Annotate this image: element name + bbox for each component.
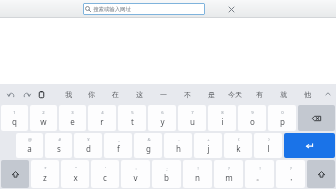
button[interactable]: More suggestions: [319, 84, 336, 104]
button[interactable]: 搜索或输入网址: [83, 3, 205, 15]
button[interactable]: 是: [199, 84, 223, 104]
button[interactable]: 3: [59, 105, 86, 131]
button[interactable]: *: [31, 160, 59, 188]
staticText: +: [207, 137, 210, 143]
button[interactable]: 他: [295, 84, 319, 104]
staticText: p: [280, 116, 285, 127]
staticText: ': [105, 166, 106, 172]
staticText: ;: [166, 166, 168, 172]
staticText: 7: [191, 110, 194, 116]
staticText: h: [176, 143, 181, 154]
staticText: m: [225, 172, 233, 183]
button[interactable]: Backspace: [298, 105, 335, 131]
staticText: !: [259, 166, 261, 172]
staticText: t: [131, 116, 134, 127]
staticText: 0: [281, 110, 284, 116]
staticText: c: [103, 172, 107, 183]
staticText: u: [190, 116, 195, 127]
staticText: ": [75, 166, 77, 172]
button[interactable]: ?: [214, 160, 243, 188]
button[interactable]: &: [134, 133, 162, 158]
button[interactable]: 不: [175, 84, 199, 104]
button[interactable]: #: [45, 133, 72, 158]
staticText: 在: [112, 90, 119, 99]
staticText: 就: [280, 90, 287, 99]
staticText: 5: [131, 110, 134, 116]
staticText: x: [73, 172, 78, 183]
staticText: i: [221, 116, 224, 127]
staticText: 6: [161, 110, 164, 116]
button[interactable]: Shift right: [307, 160, 335, 188]
staticText: z: [43, 172, 47, 183]
staticText: y: [160, 116, 165, 127]
staticText: 有: [256, 90, 263, 99]
staticText: _: [118, 137, 120, 143]
staticText: l: [267, 143, 270, 154]
button[interactable]: 就: [271, 84, 295, 104]
staticText: f: [117, 143, 120, 154]
staticText: q: [12, 116, 17, 127]
staticText: 2: [42, 110, 45, 116]
staticText: 是: [208, 90, 215, 99]
button[interactable]: Enter: [284, 133, 335, 158]
button[interactable]: Close: [225, 3, 237, 15]
button[interactable]: Redo: [19, 87, 34, 102]
staticText: n: [195, 172, 200, 183]
button[interactable]: ?: [276, 160, 305, 188]
button[interactable]: 7: [178, 105, 206, 131]
staticText: b: [164, 172, 169, 183]
button[interactable]: 我: [57, 84, 80, 104]
staticText: 4: [101, 110, 104, 116]
staticText: 我: [65, 90, 72, 99]
button[interactable]: 你: [80, 84, 103, 104]
staticText: 他: [304, 90, 311, 99]
button[interactable]: 6: [148, 105, 176, 131]
button[interactable]: 2: [30, 105, 57, 131]
button[interactable]: 有: [247, 84, 271, 104]
staticText: 一: [160, 90, 167, 99]
staticText: o: [250, 116, 255, 127]
staticText: !: [197, 166, 199, 172]
button[interactable]: :: [121, 160, 150, 188]
button[interactable]: (: [224, 133, 252, 158]
button[interactable]: 在: [103, 84, 127, 104]
staticText: ): [268, 137, 270, 143]
button[interactable]: 一: [151, 84, 175, 104]
staticText: a: [27, 143, 32, 154]
button[interactable]: 1: [1, 105, 28, 131]
staticText: d: [86, 143, 91, 154]
staticText: j: [207, 143, 210, 154]
staticText: 你: [88, 90, 95, 99]
staticText: :: [135, 166, 137, 172]
staticText: ¥: [87, 137, 90, 143]
staticText: 9: [251, 110, 254, 116]
button[interactable]: ': [91, 160, 119, 188]
button[interactable]: Clipboard: [34, 87, 49, 102]
button[interactable]: -: [164, 133, 192, 158]
button[interactable]: !: [245, 160, 274, 188]
staticText: 今天: [228, 90, 242, 99]
button[interactable]: @: [16, 133, 43, 158]
button[interactable]: 0: [268, 105, 296, 131]
button[interactable]: 8: [208, 105, 236, 131]
button[interactable]: 4: [88, 105, 116, 131]
staticText: -: [178, 137, 180, 143]
staticText: 3: [71, 110, 74, 116]
staticText: s: [57, 143, 61, 154]
staticText: (: [238, 137, 240, 143]
staticText: #: [58, 137, 61, 143]
button[interactable]: ": [61, 160, 89, 188]
button[interactable]: 5: [118, 105, 146, 131]
button[interactable]: ;: [152, 160, 181, 188]
button[interactable]: Shift: [1, 160, 29, 188]
button[interactable]: ¥: [74, 133, 102, 158]
button[interactable]: ): [254, 133, 282, 158]
button[interactable]: !: [183, 160, 212, 188]
button[interactable]: 今天: [223, 84, 247, 104]
button[interactable]: _: [104, 133, 132, 158]
button[interactable]: 这: [127, 84, 151, 104]
button[interactable]: 9: [238, 105, 266, 131]
staticText: @: [28, 137, 32, 143]
button[interactable]: Undo: [4, 87, 19, 102]
button[interactable]: +: [194, 133, 222, 158]
